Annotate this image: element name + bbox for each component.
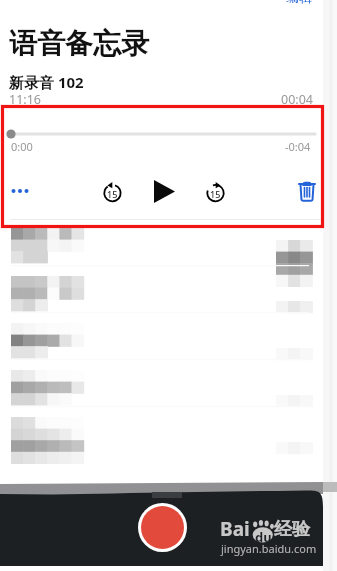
button[interactable] — [0, 322, 323, 369]
staticText: 11:16 — [9, 91, 41, 108]
staticText: 经验 — [274, 518, 310, 541]
button[interactable]: Delete — [288, 171, 326, 211]
button[interactable]: Skip forward 15 seconds — [196, 171, 234, 211]
staticText: -0:04 — [285, 139, 311, 154]
staticText: Bai — [220, 516, 250, 542]
button[interactable] — [0, 369, 323, 416]
button[interactable] — [0, 275, 323, 322]
staticText: jingyan.baidu.com — [221, 541, 317, 556]
staticText: 新录音 102 — [9, 72, 84, 92]
staticText: 编辑 — [286, 0, 312, 5]
button[interactable]: 编辑 — [280, 0, 318, 7]
staticText: 语音备忘录 — [9, 26, 149, 61]
button[interactable]: More options — [2, 171, 38, 211]
button[interactable] — [0, 228, 323, 275]
button[interactable] — [0, 416, 323, 463]
staticText: 15 — [107, 188, 118, 200]
staticText: 15 — [210, 188, 221, 200]
staticText: du — [255, 528, 272, 546]
button[interactable]: Play — [145, 171, 183, 211]
button[interactable]: Record — [138, 503, 187, 552]
button[interactable]: Skip back 15 seconds — [93, 171, 131, 211]
staticText: 00:04 — [281, 91, 313, 108]
staticText: 0:00 — [11, 139, 33, 154]
